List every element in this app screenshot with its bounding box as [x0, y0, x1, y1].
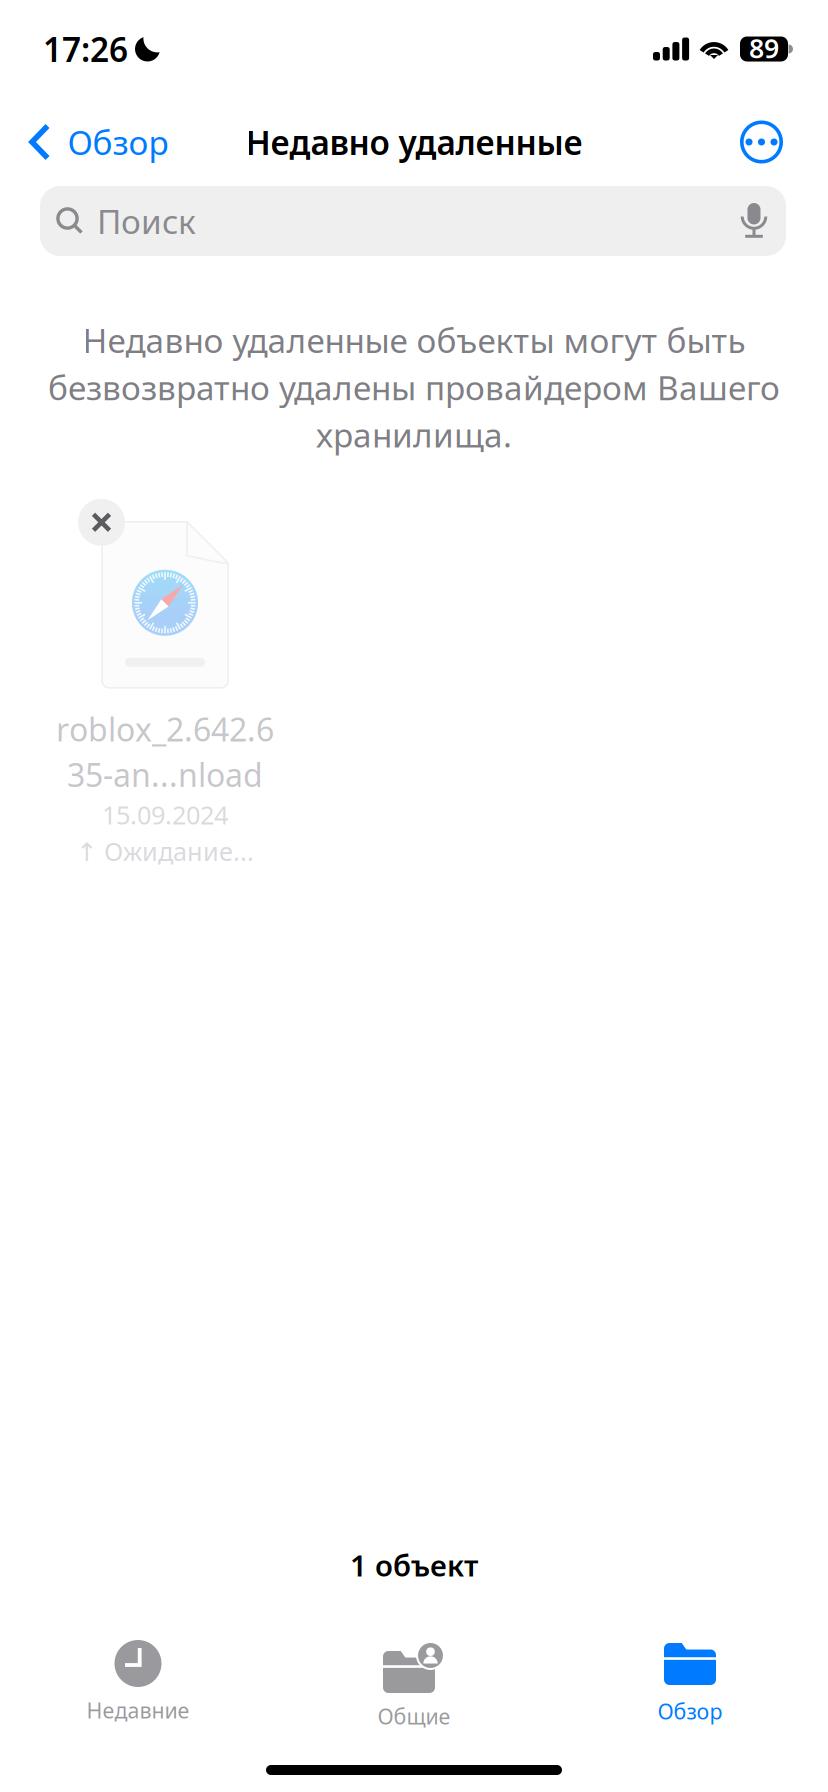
staticText: Недавние: [86, 1696, 189, 1724]
staticText: roblox_2.642.6: [56, 708, 274, 750]
staticText: Общие: [377, 1702, 450, 1730]
staticText: Недавно удаленные объекты могут быть: [82, 318, 745, 362]
button[interactable]: Общие: [276, 1640, 552, 1764]
staticText: 17:26: [43, 27, 128, 71]
staticText: Обзор: [67, 120, 168, 164]
button[interactable]: Поиск: [40, 186, 786, 256]
button[interactable]: Обзор: [0, 104, 184, 180]
staticText: хранилища.: [316, 412, 512, 457]
staticText: 35-an...nload: [67, 753, 263, 796]
staticText: Поиск: [97, 199, 196, 243]
button[interactable]: roblox_2.642.6: [41, 499, 289, 868]
staticText: безвозвратно удалены провайдером Вашего: [48, 365, 780, 410]
button[interactable]: Дополнительно: [716, 104, 828, 180]
button[interactable]: Обзор: [552, 1640, 828, 1764]
button[interactable]: Недавние: [0, 1640, 276, 1764]
staticText: ↑ Ожидание...: [76, 834, 254, 868]
staticText: Недавно удаленные: [245, 120, 582, 164]
staticText: 15.09.2024: [102, 798, 228, 831]
staticText: 1 объект: [350, 1545, 478, 1584]
staticText: 89: [749, 30, 779, 66]
staticText: Обзор: [657, 1697, 722, 1725]
